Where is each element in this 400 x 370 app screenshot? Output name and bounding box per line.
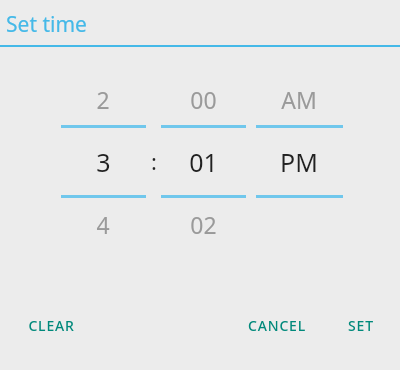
staticText: SET: [348, 316, 374, 335]
staticText: 00: [190, 84, 217, 115]
staticText: PM: [280, 145, 318, 179]
button[interactable]: CANCEL: [240, 310, 314, 341]
staticText: Set time: [6, 10, 87, 39]
button[interactable]: AM or PM: [255, 73, 343, 250]
button[interactable]: Hour: [58, 73, 148, 250]
staticText: 02: [190, 209, 217, 240]
staticText: 01: [189, 145, 218, 179]
staticText: AM: [281, 84, 317, 115]
staticText: 3: [96, 145, 111, 179]
button[interactable]: CLEAR: [20, 310, 83, 341]
button[interactable]: SET: [340, 310, 382, 341]
staticText: CANCEL: [248, 316, 306, 335]
staticText: :: [151, 146, 157, 176]
button[interactable]: Minute: [160, 73, 246, 250]
staticText: 4: [96, 209, 110, 240]
staticText: 2: [96, 84, 110, 115]
staticText: CLEAR: [28, 316, 75, 335]
